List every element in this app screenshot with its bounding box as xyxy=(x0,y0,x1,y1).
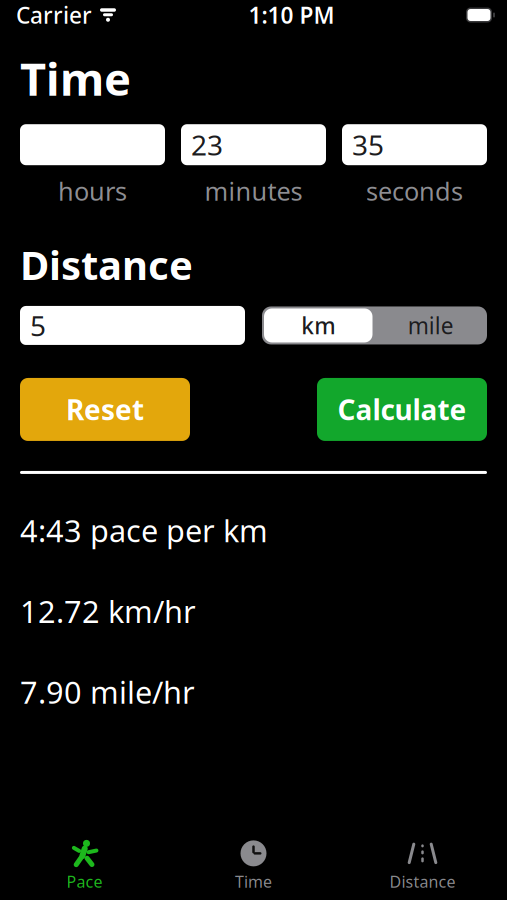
staticText: hours xyxy=(58,174,127,208)
button[interactable] xyxy=(20,124,165,165)
staticText: Time xyxy=(235,871,272,892)
button[interactable]: km xyxy=(264,308,372,342)
button[interactable]: Distance xyxy=(338,832,507,900)
button[interactable]: 5 xyxy=(20,306,245,345)
staticText: 1:10 PM xyxy=(248,0,334,30)
staticText: mile xyxy=(408,310,454,340)
staticText: 23 xyxy=(191,126,223,163)
staticText: 12.72 km/hr xyxy=(20,591,196,631)
staticText: Distance xyxy=(20,238,193,291)
staticText: Distance xyxy=(389,871,455,892)
button[interactable]: Calculate xyxy=(317,378,487,441)
staticText: Reset xyxy=(66,391,144,428)
staticText: seconds xyxy=(366,174,463,208)
staticText: Carrier xyxy=(16,0,92,30)
button[interactable]: Pace xyxy=(0,832,169,900)
staticText: minutes xyxy=(204,174,302,208)
staticText: 7.90 mile/hr xyxy=(20,671,195,712)
button[interactable]: Reset xyxy=(20,378,190,441)
button[interactable]: mile xyxy=(374,306,487,344)
button[interactable]: 23 xyxy=(181,124,326,165)
staticText: Calculate xyxy=(337,391,466,428)
staticText: Pace xyxy=(66,871,102,892)
staticText: 5 xyxy=(30,307,46,344)
staticText: km xyxy=(301,310,335,340)
staticText: Time xyxy=(20,48,131,108)
button[interactable]: Time xyxy=(169,832,338,900)
staticText: 35 xyxy=(352,126,384,163)
button[interactable]: 35 xyxy=(342,124,487,165)
staticText: 4:43 pace per km xyxy=(20,510,268,551)
